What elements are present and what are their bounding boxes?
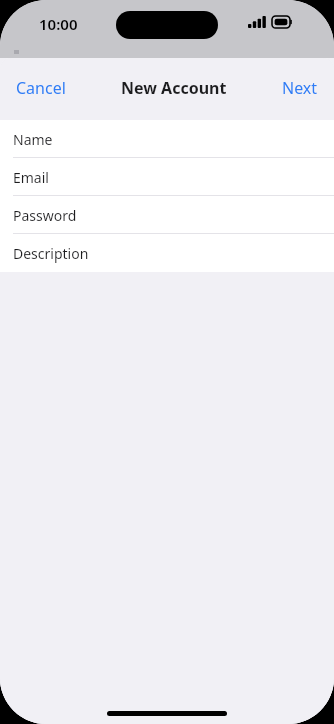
button[interactable]: Description: [0, 234, 334, 272]
button[interactable]: Cancel: [4, 71, 78, 105]
staticText: Email: [13, 168, 49, 187]
staticText: Description: [13, 244, 89, 263]
button[interactable]: Password: [0, 196, 334, 234]
button[interactable]: Next: [270, 71, 330, 105]
staticText: Next: [282, 77, 318, 99]
button[interactable]: Email: [0, 158, 334, 196]
staticText: 10:00: [39, 14, 78, 34]
staticText: Cancel: [16, 77, 66, 99]
staticText: Name: [13, 130, 53, 149]
staticText: New Account: [121, 77, 227, 99]
button[interactable]: Name: [0, 120, 334, 158]
staticText: Password: [13, 206, 77, 225]
